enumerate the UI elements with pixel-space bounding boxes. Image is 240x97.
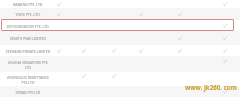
staticText: ZENITH PEAK LIMITED (0, 36, 56, 41)
staticText: ZHONGGUO REMITTANCE PTE LTD (0, 75, 56, 85)
staticText: NANJING PTE. LTD. (0, 2, 56, 7)
staticText: ZIPAID PTE LTD (0, 90, 56, 95)
button[interactable]: ZIPAID PTE LTD (0, 87, 240, 97)
button[interactable]: ZENITH PEAK LIMITED (0, 32, 240, 45)
staticText: www. jk260. com (185, 83, 237, 91)
button[interactable]: ZHONGGUO REMITTANCE PTE LTD (0, 72, 240, 87)
staticText: ZHUHAI SINGAPORE PTE LTD (0, 60, 56, 70)
button[interactable]: ZEPHAIRE PRIVATE LIMITED (0, 45, 240, 57)
staticText: YIUFE PTE. LTD. (0, 12, 56, 17)
button[interactable]: NANJING PTE. LTD. (0, 0, 240, 9)
button[interactable]: YIUFE PTE. LTD. (0, 9, 240, 20)
button[interactable]: ZB FOUNDATION PTE. LTD. (0, 20, 240, 32)
staticText: ZEPHAIRE PRIVATE LIMITED (0, 49, 56, 54)
button[interactable]: ZHUHAI SINGAPORE PTE LTD (0, 57, 240, 72)
staticText: ZB FOUNDATION PTE. LTD. (0, 24, 56, 29)
